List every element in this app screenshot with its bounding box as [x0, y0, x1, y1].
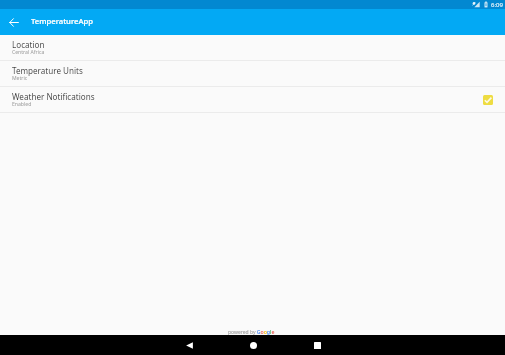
button[interactable]: Weather notifications enabled — [483, 95, 493, 105]
staticText: Location — [12, 39, 45, 50]
button[interactable]: Home — [233, 335, 273, 355]
staticText: Central Africa — [12, 49, 45, 56]
staticText: powered by Google — [228, 328, 275, 335]
staticText: Metric — [12, 75, 28, 82]
button[interactable]: Weather Notifications — [0, 87, 505, 112]
staticText: Enabled — [12, 101, 32, 108]
staticText: TemperatureApp — [31, 16, 93, 26]
staticText: Weather Notifications — [12, 91, 95, 102]
button[interactable]: Navigate up — [0, 9, 26, 35]
staticText: 6:09 — [491, 1, 503, 9]
button[interactable]: Recent apps — [297, 335, 337, 355]
button[interactable]: Location — [0, 35, 505, 60]
button[interactable]: Temperature Units — [0, 61, 505, 86]
staticText: Temperature Units — [12, 65, 83, 76]
button[interactable]: Back — [169, 335, 209, 355]
